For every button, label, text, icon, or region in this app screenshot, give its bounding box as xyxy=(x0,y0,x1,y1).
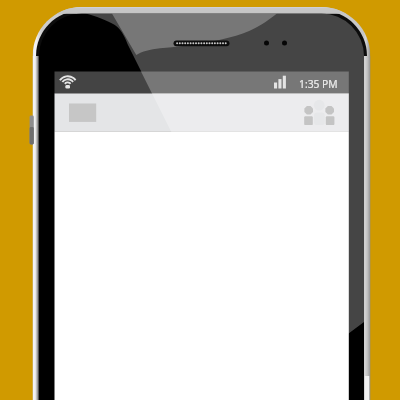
other: Phone mockup xyxy=(0,0,400,400)
